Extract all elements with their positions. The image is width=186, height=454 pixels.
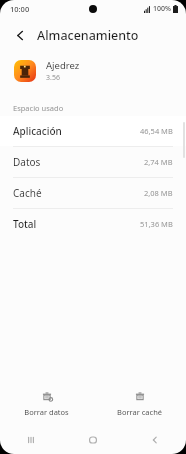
staticText: Espacio usado bbox=[13, 103, 64, 113]
button[interactable]: Inicio bbox=[62, 426, 124, 454]
staticText: Datos bbox=[13, 155, 41, 169]
button[interactable]: Datos bbox=[0, 147, 186, 177]
staticText: Ajedrez bbox=[46, 59, 80, 72]
staticText: 100% bbox=[153, 4, 171, 14]
staticText: Total bbox=[13, 217, 37, 231]
staticText: Borrar caché bbox=[117, 407, 162, 417]
button[interactable]: Ajedrez bbox=[0, 52, 186, 90]
staticText: 51,36 MB bbox=[140, 219, 173, 229]
staticText: 2,08 MB bbox=[144, 188, 173, 198]
staticText: Aplicación bbox=[13, 124, 62, 138]
staticText: 10:00 bbox=[10, 4, 30, 14]
button[interactable]: Aplicación bbox=[0, 116, 186, 146]
button[interactable]: Atrás bbox=[124, 426, 186, 454]
button[interactable]: Borrar caché bbox=[93, 382, 186, 426]
staticText: Borrar datos bbox=[24, 407, 69, 417]
button[interactable]: Total bbox=[0, 209, 186, 239]
staticText: 46,54 MB bbox=[140, 126, 173, 136]
button[interactable]: Caché bbox=[0, 178, 186, 208]
staticText: Caché bbox=[13, 186, 42, 200]
button[interactable]: Atrás bbox=[9, 24, 31, 46]
staticText: 3.56 bbox=[46, 73, 60, 83]
staticText: 2,74 MB bbox=[144, 157, 173, 167]
button[interactable]: Borrar datos bbox=[0, 382, 93, 426]
button[interactable]: Recientes bbox=[0, 426, 62, 454]
staticText: Almacenamiento bbox=[37, 27, 139, 44]
